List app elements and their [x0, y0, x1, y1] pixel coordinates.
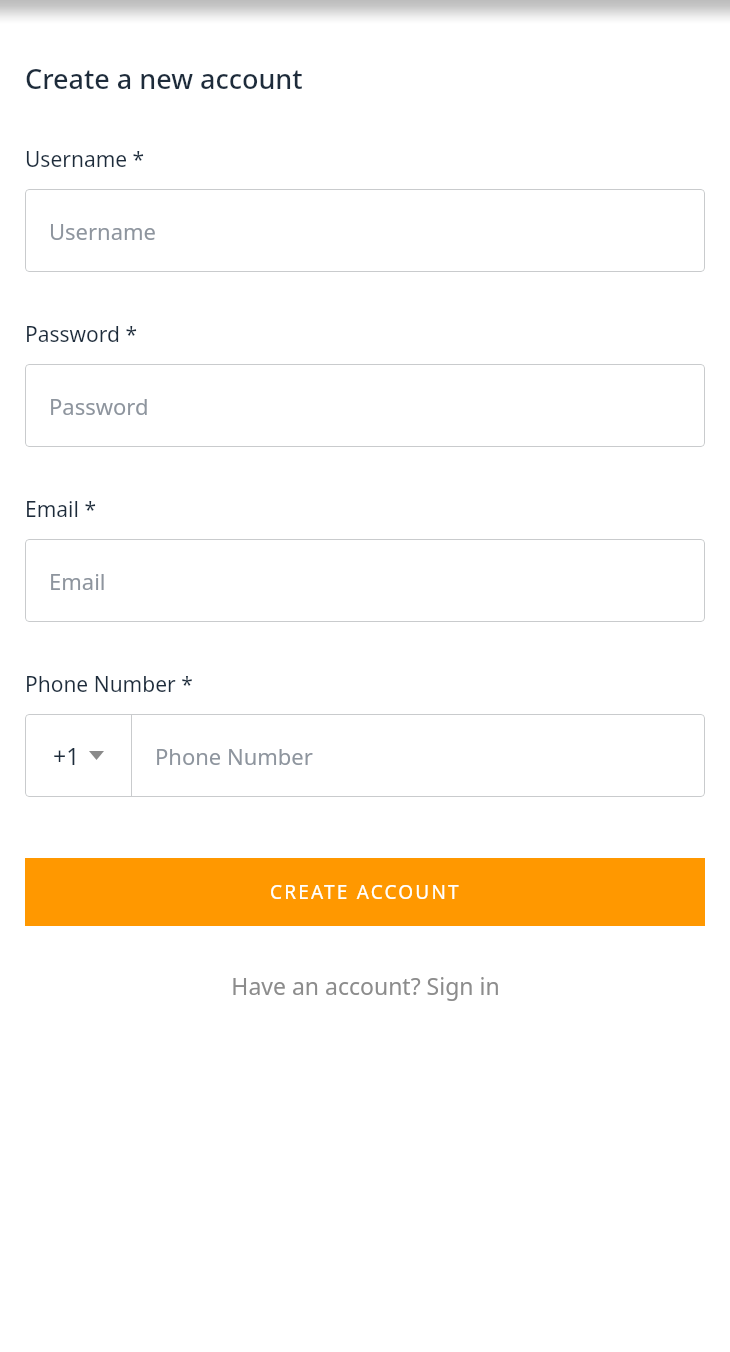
button[interactable]: Email: [25, 539, 705, 622]
button[interactable]: Have an account? Sign in: [25, 965, 705, 1005]
staticText: Create a new account: [25, 60, 303, 97]
staticText: +1: [53, 740, 80, 771]
staticText: Username: [49, 216, 157, 246]
staticText: Username *: [25, 145, 145, 174]
staticText: Email *: [25, 495, 96, 524]
button[interactable]: Password: [25, 364, 705, 447]
staticText: Have an account? Sign in: [231, 970, 500, 1001]
staticText: Phone Number: [155, 741, 313, 771]
button[interactable]: Phone Number: [132, 714, 705, 797]
button[interactable]: CREATE ACCOUNT: [25, 858, 705, 926]
staticText: CREATE ACCOUNT: [270, 879, 461, 905]
staticText: Password: [49, 391, 149, 421]
staticText: Password *: [25, 320, 138, 349]
button[interactable]: Select country calling code, +1: [25, 714, 131, 797]
staticText: Phone Number *: [25, 670, 193, 699]
button[interactable]: Username: [25, 189, 705, 272]
staticText: Email: [49, 566, 106, 596]
